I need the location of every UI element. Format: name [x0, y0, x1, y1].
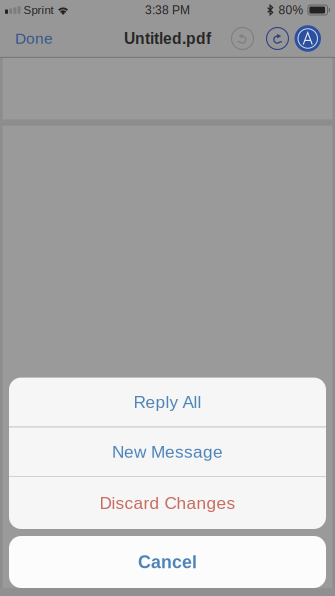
button[interactable]: Cancel [0, 536, 335, 588]
staticText: Sprint [24, 4, 54, 16]
staticText: Discard Changes [99, 493, 235, 513]
staticText: Cancel [138, 552, 197, 572]
button[interactable]: Markup [294, 25, 321, 52]
staticText: Untitled.pdf [124, 30, 211, 47]
button[interactable]: New Message [9, 427, 326, 476]
button[interactable]: Done [0, 20, 68, 57]
button[interactable]: Discard Changes [9, 477, 326, 529]
staticText: 3:38 PM [145, 3, 190, 17]
button[interactable]: Undo [231, 27, 253, 49]
staticText: Reply All [133, 392, 201, 412]
staticText: 80% [278, 3, 303, 17]
button[interactable]: Reply All [9, 378, 326, 427]
staticText: Done [15, 30, 53, 47]
button[interactable]: Redo [266, 27, 288, 49]
staticText: New Message [112, 442, 223, 461]
